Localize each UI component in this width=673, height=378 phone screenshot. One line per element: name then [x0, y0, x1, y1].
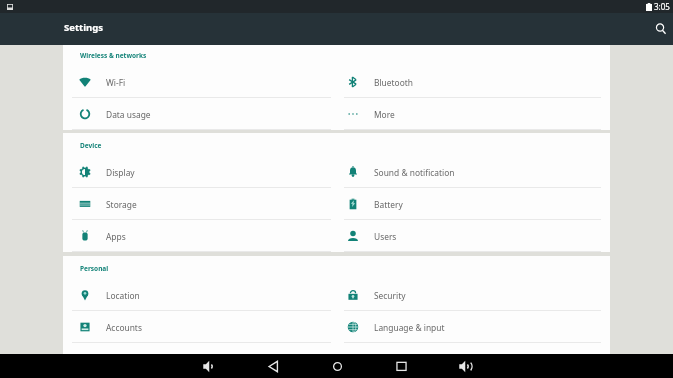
button[interactable]: Sound & notification — [331, 156, 610, 188]
staticText: Wi-Fi — [106, 77, 126, 88]
staticText: Settings — [64, 21, 103, 34]
staticText: Storage — [106, 199, 137, 210]
button[interactable]: Apps — [63, 220, 331, 252]
staticText: Language & input — [374, 322, 445, 333]
staticText: Accounts — [106, 322, 142, 333]
button[interactable]: Search — [649, 17, 673, 41]
button[interactable]: Accounts — [63, 311, 331, 343]
button[interactable]: Home — [326, 355, 348, 377]
staticText: 3:05 — [654, 1, 670, 12]
staticText: Data usage — [106, 109, 151, 120]
staticText: Users — [374, 231, 397, 242]
staticText: Battery — [374, 199, 403, 210]
staticText: More — [374, 109, 395, 120]
staticText: Personal — [80, 264, 109, 273]
button[interactable]: Security — [331, 279, 610, 311]
button[interactable]: Volume up — [454, 355, 476, 377]
staticText: Apps — [106, 231, 126, 242]
button[interactable]: Users — [331, 220, 610, 252]
button[interactable]: Wi-Fi — [63, 66, 331, 98]
button[interactable]: Storage — [63, 188, 331, 220]
button[interactable]: Data usage — [63, 98, 331, 130]
button[interactable]: Language & input — [331, 311, 610, 343]
button[interactable]: Display — [63, 156, 331, 188]
button[interactable]: Location — [63, 279, 331, 311]
staticText: Sound & notification — [374, 167, 455, 178]
staticText: Bluetooth — [374, 77, 413, 88]
staticText: Security — [374, 290, 406, 301]
staticText: Display — [106, 167, 135, 178]
staticText: Wireless & networks — [80, 51, 147, 60]
button[interactable]: More — [331, 98, 610, 130]
button[interactable]: Battery — [331, 188, 610, 220]
button[interactable]: Back — [262, 355, 284, 377]
button[interactable]: Recents — [390, 355, 412, 377]
staticText: Location — [106, 290, 140, 301]
button[interactable]: Volume down — [198, 355, 220, 377]
staticText: Device — [80, 141, 102, 150]
button[interactable]: Bluetooth — [331, 66, 610, 98]
